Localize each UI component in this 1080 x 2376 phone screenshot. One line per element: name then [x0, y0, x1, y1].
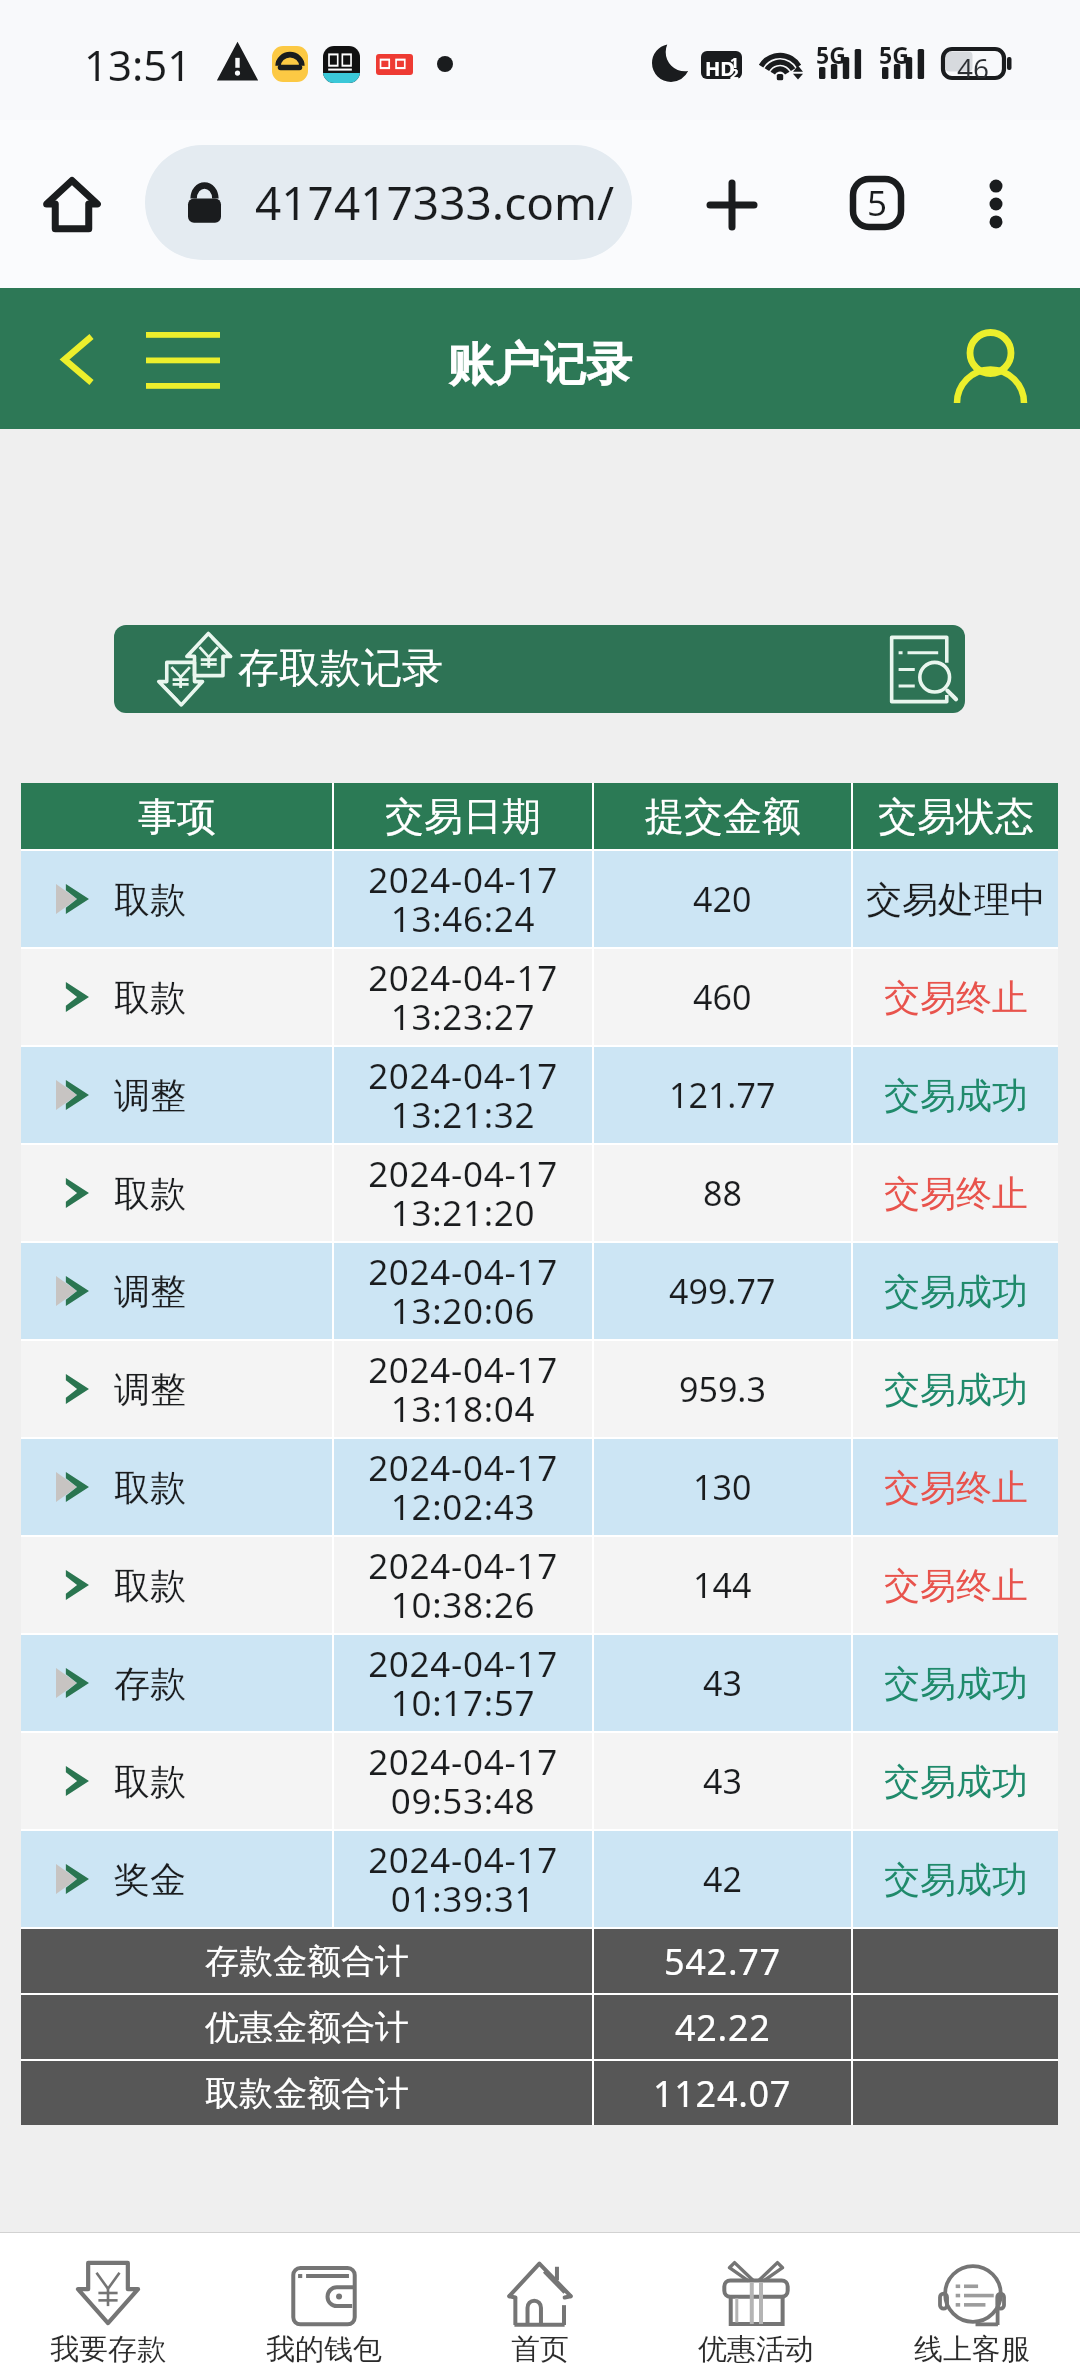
staticText: 130 — [693, 1464, 752, 1510]
button[interactable]: 首页 — [432, 2233, 648, 2376]
staticText: 420 — [693, 876, 752, 922]
staticText: 959.3 — [679, 1366, 766, 1412]
staticText: 调整 — [114, 1269, 186, 1314]
staticText: 2024-04-17 13:21:32 — [368, 1052, 558, 1138]
staticText: 奖金 — [114, 1857, 186, 1902]
staticText: 交易日期 — [385, 792, 541, 841]
staticText: 存款金额合计 — [205, 1940, 409, 1983]
staticText: 43 — [703, 1660, 742, 1706]
staticText: 交易状态 — [878, 792, 1034, 841]
staticText: 首页 — [511, 2331, 569, 2368]
staticText: 取款金额合计 — [205, 2072, 409, 2115]
staticText: 交易成功 — [884, 1661, 1028, 1706]
staticText: 交易成功 — [884, 1269, 1028, 1314]
staticText: 88 — [703, 1170, 742, 1216]
button[interactable]: New tab — [708, 181, 756, 229]
staticText: 2024-04-17 13:46:24 — [368, 856, 558, 942]
staticText: 交易成功 — [884, 1759, 1028, 1804]
staticText: 调整 — [114, 1367, 186, 1412]
staticText: 43 — [703, 1758, 742, 1804]
staticText: 存款 — [114, 1661, 186, 1706]
staticText: 2024-04-17 10:38:26 — [368, 1542, 558, 1628]
staticText: 交易成功 — [884, 1367, 1028, 1412]
staticText: 46 — [957, 49, 990, 78]
button[interactable]: Tabs — [850, 176, 904, 230]
staticText: 1124.07 — [653, 2069, 792, 2118]
staticText: 事项 — [138, 792, 216, 841]
staticText: 2024-04-17 13:18:04 — [368, 1346, 558, 1432]
staticText: 2024-04-17 12:02:43 — [368, 1444, 558, 1530]
staticText: 交易终止 — [884, 1563, 1028, 1608]
staticText: 42.22 — [675, 2003, 771, 2052]
staticText: 交易成功 — [884, 1857, 1028, 1902]
button[interactable]: 存取款记录 — [114, 625, 965, 713]
staticText: 144 — [693, 1562, 752, 1608]
staticText: 取款 — [114, 1759, 186, 1804]
staticText: 2024-04-17 13:23:27 — [368, 954, 558, 1040]
staticText: 我的钱包 — [266, 2331, 382, 2368]
staticText: 交易终止 — [884, 1465, 1028, 1510]
staticText: 线上客服 — [914, 2331, 1030, 2368]
staticText: HD — [705, 55, 735, 82]
staticText: 2 — [730, 63, 739, 83]
button[interactable]: Account — [948, 320, 1034, 408]
staticText: 提交金额 — [645, 792, 801, 841]
button[interactable]: 优惠活动 — [648, 2233, 864, 2376]
staticText: 5 — [867, 179, 888, 227]
staticText: 账户记录 — [448, 336, 632, 394]
staticText: 42 — [703, 1856, 742, 1902]
button[interactable]: 我要存款 — [0, 2233, 216, 2376]
staticText: 优惠金额合计 — [205, 2006, 409, 2049]
staticText: 取款 — [114, 1465, 186, 1510]
staticText: 优惠活动 — [698, 2331, 814, 2368]
staticText: 交易终止 — [884, 1171, 1028, 1216]
staticText: 2024-04-17 01:39:31 — [368, 1836, 558, 1922]
staticText: 交易成功 — [884, 1073, 1028, 1118]
staticText: 1 — [730, 52, 739, 72]
staticText: 调整 — [114, 1073, 186, 1118]
staticText: 交易处理中 — [866, 877, 1046, 922]
staticText: 取款 — [114, 1171, 186, 1216]
staticText: 5G — [879, 39, 909, 70]
staticText: 取款 — [114, 1563, 186, 1608]
button[interactable]: 线上客服 — [864, 2233, 1080, 2376]
staticText: 2024-04-17 09:53:48 — [368, 1738, 558, 1824]
button[interactable]: 417417333.com/ — [145, 145, 632, 260]
button[interactable]: Home — [45, 176, 99, 232]
staticText: 121.77 — [669, 1072, 776, 1118]
button[interactable]: Back — [58, 333, 95, 386]
staticText: 取款 — [114, 877, 186, 922]
staticText: 460 — [693, 974, 752, 1020]
button[interactable]: Menu — [146, 332, 220, 389]
button[interactable]: More options — [984, 181, 1008, 227]
staticText: 499.77 — [669, 1268, 776, 1314]
staticText: 2024-04-17 10:17:57 — [368, 1640, 558, 1726]
staticText: 2024-04-17 13:21:20 — [368, 1150, 558, 1236]
staticText: 交易终止 — [884, 975, 1028, 1020]
staticText: 取款 — [114, 975, 186, 1020]
staticText: 我要存款 — [50, 2331, 166, 2368]
button[interactable]: 我的钱包 — [216, 2233, 432, 2376]
staticText: 417417333.com/ — [255, 171, 615, 234]
staticText: 542.77 — [664, 1937, 781, 1986]
staticText: 存取款记录 — [238, 643, 443, 695]
staticText: 2024-04-17 13:20:06 — [368, 1248, 558, 1334]
staticText: 13:51 — [84, 36, 192, 93]
staticText: 5G — [816, 39, 846, 70]
